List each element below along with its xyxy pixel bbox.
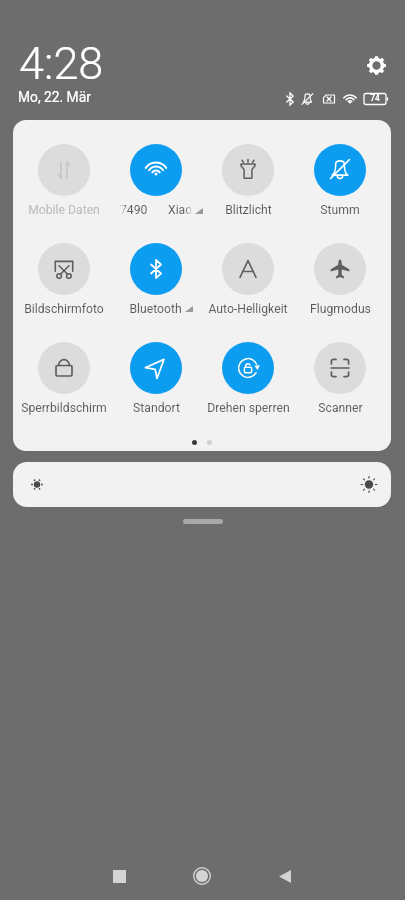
button[interactable]: Back: [269, 860, 301, 892]
staticText: Flugmodus: [310, 302, 371, 316]
button[interactable]: Recent apps: [103, 860, 135, 892]
button[interactable]: [13, 462, 391, 507]
button[interactable]: Stumm: [294, 144, 386, 217]
button[interactable]: Home: [186, 860, 218, 892]
button[interactable]: Mobile Daten: [18, 144, 110, 217]
staticText: Sperrbildschirm: [21, 401, 107, 415]
button[interactable]: Settings: [362, 51, 391, 80]
staticText: Scanner: [318, 401, 363, 415]
staticText: Bildschirmfoto: [24, 302, 104, 316]
button[interactable]: Standort: [110, 342, 202, 415]
button[interactable]: Blitzlicht: [202, 144, 294, 217]
button[interactable]: Bildschirmfoto: [18, 243, 110, 316]
button[interactable]: Drehen sperren: [202, 342, 294, 415]
button[interactable]: 7490: [110, 144, 202, 218]
staticText: 74: [367, 93, 383, 103]
staticText: 4:28: [19, 37, 104, 90]
button[interactable]: Flugmodus: [294, 243, 386, 316]
staticText: Xiao: [168, 203, 193, 217]
staticText: Mobile Daten: [28, 203, 100, 217]
button[interactable]: Scanner: [294, 342, 386, 415]
staticText: Stumm: [320, 203, 360, 217]
staticText: Auto-Helligkeit: [208, 302, 288, 316]
staticText: Bluetooth: [129, 302, 182, 316]
staticText: Drehen sperren: [207, 401, 290, 415]
staticText: 7490: [120, 203, 148, 217]
staticText: Mo, 22. Mär: [18, 89, 91, 105]
staticText: Standort: [133, 401, 180, 415]
staticText: Blitzlicht: [225, 203, 272, 217]
button[interactable]: Auto-Helligkeit: [202, 243, 294, 316]
button[interactable]: Sperrbildschirm: [18, 342, 110, 415]
button[interactable]: Bluetooth: [110, 243, 202, 316]
